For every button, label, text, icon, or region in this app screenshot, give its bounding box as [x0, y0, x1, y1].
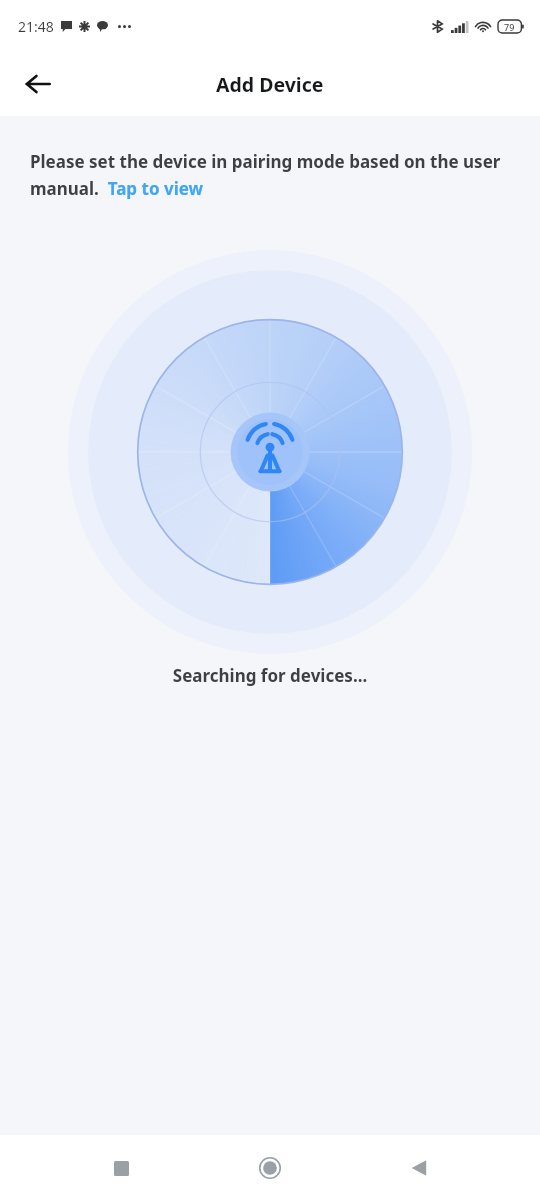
staticText: 21:48: [18, 17, 54, 36]
staticText: Add Device: [216, 71, 324, 98]
button[interactable]: Home: [242, 1140, 298, 1196]
button[interactable]: Back: [14, 60, 62, 108]
staticText: Searching for devices...: [0, 664, 540, 687]
button[interactable]: Recent apps: [93, 1140, 149, 1196]
staticText: Please set the device in pairing mode ba…: [30, 150, 510, 200]
button[interactable]: Please set the device in pairing mode ba…: [30, 150, 510, 200]
staticText: 79: [504, 21, 515, 33]
button[interactable]: Back: [391, 1140, 447, 1196]
